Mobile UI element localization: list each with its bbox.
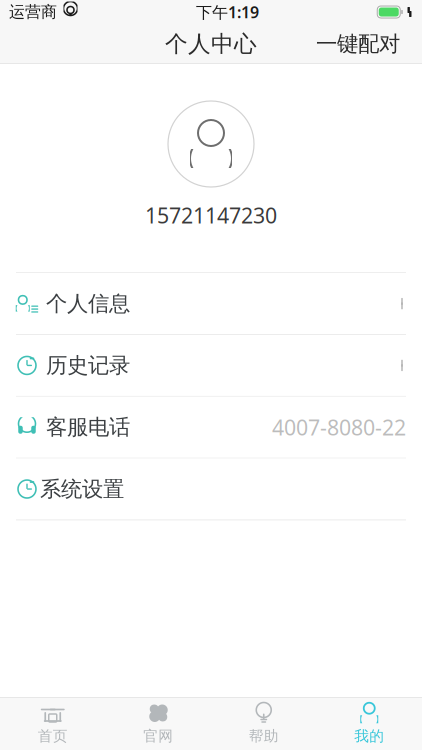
button[interactable]: 系统设置: [0, 458, 422, 520]
staticText: 个人信息: [46, 290, 130, 317]
button[interactable]: 官网: [105, 696, 211, 750]
button[interactable]: 个人信息: [0, 273, 422, 335]
button[interactable]: 历史记录: [0, 335, 422, 397]
staticText: 首页: [38, 727, 68, 745]
staticText: 历史记录: [46, 352, 130, 378]
staticText: 运营商: [9, 2, 57, 22]
staticText: 一键配对: [316, 31, 400, 57]
staticText: 我的: [354, 727, 384, 745]
staticText: 帮助: [249, 727, 279, 745]
staticText: 下午1:19: [196, 1, 259, 23]
button[interactable]: 一键配对: [304, 23, 412, 65]
staticText: 4007-8080-22: [272, 413, 406, 441]
staticText: 官网: [143, 727, 173, 745]
staticText: 15721147230: [145, 201, 277, 229]
staticText: 个人中心: [165, 30, 257, 58]
button[interactable]: 我的: [316, 696, 422, 750]
button[interactable]: 首页: [0, 696, 105, 750]
staticText: 客服电话: [46, 414, 130, 440]
button[interactable]: 客服电话: [0, 397, 422, 458]
staticText: 系统设置: [40, 476, 124, 502]
button[interactable]: 帮助: [211, 696, 316, 750]
